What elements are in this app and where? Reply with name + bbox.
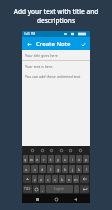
staticText: s xyxy=(34,167,36,172)
button[interactable]: Keyboard tool 2 xyxy=(48,147,54,153)
staticText: Create Note xyxy=(36,40,71,48)
button[interactable]: Your title goes here xyxy=(22,50,90,61)
staticText: a xyxy=(25,167,28,172)
staticText: d xyxy=(41,167,44,172)
staticText: r xyxy=(43,157,45,162)
staticText: h xyxy=(64,167,67,172)
button[interactable]: j xyxy=(69,165,75,173)
button[interactable]: r xyxy=(41,155,47,163)
button[interactable]: n xyxy=(66,175,72,183)
button[interactable]: k xyxy=(76,165,82,173)
button[interactable]: English xyxy=(46,185,73,193)
button[interactable]: i xyxy=(69,155,75,163)
staticText: . xyxy=(76,187,78,192)
button[interactable]: Keyboard tool 1 xyxy=(39,147,45,153)
button[interactable]: z xyxy=(32,175,37,183)
button[interactable]: p xyxy=(83,155,89,163)
staticText: Your text is here. xyxy=(25,64,54,69)
button[interactable]: a xyxy=(23,165,30,173)
staticText: v xyxy=(54,177,56,182)
staticText: ?123 xyxy=(24,187,31,191)
button[interactable]: c xyxy=(45,175,51,183)
staticText: k xyxy=(78,167,81,172)
staticText: m xyxy=(74,177,78,182)
button[interactable]: Recents xyxy=(71,195,79,203)
staticText: u xyxy=(64,157,67,162)
button[interactable]: Keyboard tool 4 xyxy=(67,147,73,153)
button[interactable]: e xyxy=(35,155,40,163)
button[interactable]: Back xyxy=(25,40,33,48)
staticText: j xyxy=(72,167,73,172)
staticText: f xyxy=(50,167,52,172)
button[interactable]: Enter xyxy=(80,185,89,193)
staticText: 5:45 PM xyxy=(24,32,36,36)
button[interactable]: h xyxy=(62,165,68,173)
button[interactable]: y xyxy=(55,155,61,163)
button[interactable]: ?123 xyxy=(23,185,32,193)
button[interactable]: Keyboard tool 0 xyxy=(29,147,35,153)
staticText: g xyxy=(57,167,60,172)
staticText: Add your text with title and description… xyxy=(6,7,106,25)
staticText: c xyxy=(47,177,49,182)
button[interactable]: t xyxy=(48,155,54,163)
staticText: o xyxy=(78,157,81,162)
button[interactable]: Back xyxy=(33,195,41,203)
button[interactable]: , xyxy=(40,185,45,193)
button[interactable]: g xyxy=(55,165,61,173)
staticText: You can add these unlimited text xyxy=(25,74,81,79)
staticText: b xyxy=(61,177,64,182)
button[interactable]: Emoji xyxy=(33,185,39,193)
staticText: i xyxy=(72,157,73,162)
button[interactable]: b xyxy=(59,175,65,183)
staticText: x xyxy=(40,177,43,182)
staticText: l xyxy=(86,167,87,172)
button[interactable]: Home xyxy=(52,195,60,203)
button[interactable]: Shift xyxy=(23,175,31,183)
staticText: z xyxy=(34,177,36,182)
button[interactable]: Save xyxy=(79,40,87,48)
button[interactable]: u xyxy=(62,155,68,163)
button[interactable]: . xyxy=(74,185,79,193)
button[interactable]: w xyxy=(29,155,34,163)
staticText: e xyxy=(36,157,39,162)
button[interactable]: m xyxy=(73,175,79,183)
staticText: , xyxy=(42,187,44,192)
button[interactable]: d xyxy=(39,165,46,173)
button[interactable]: s xyxy=(31,165,38,173)
button[interactable]: o xyxy=(76,155,82,163)
button[interactable]: v xyxy=(52,175,58,183)
button[interactable]: q xyxy=(23,155,28,163)
staticText: q xyxy=(24,157,27,162)
staticText: n xyxy=(68,177,71,182)
button[interactable]: Backspace xyxy=(80,175,89,183)
button[interactable]: l xyxy=(83,165,89,173)
staticText: p xyxy=(85,157,88,162)
staticText: English xyxy=(54,187,65,191)
staticText: y xyxy=(57,157,59,162)
button[interactable]: Your text is here. xyxy=(22,61,90,71)
button[interactable]: Keyboard tool 3 xyxy=(58,147,64,153)
button[interactable]: f xyxy=(47,165,54,173)
staticText: Your title goes here xyxy=(25,53,58,58)
staticText: w xyxy=(30,157,33,162)
button[interactable]: x xyxy=(38,175,44,183)
button[interactable]: Keyboard tool 5 xyxy=(77,147,83,153)
staticText: t xyxy=(50,157,52,162)
